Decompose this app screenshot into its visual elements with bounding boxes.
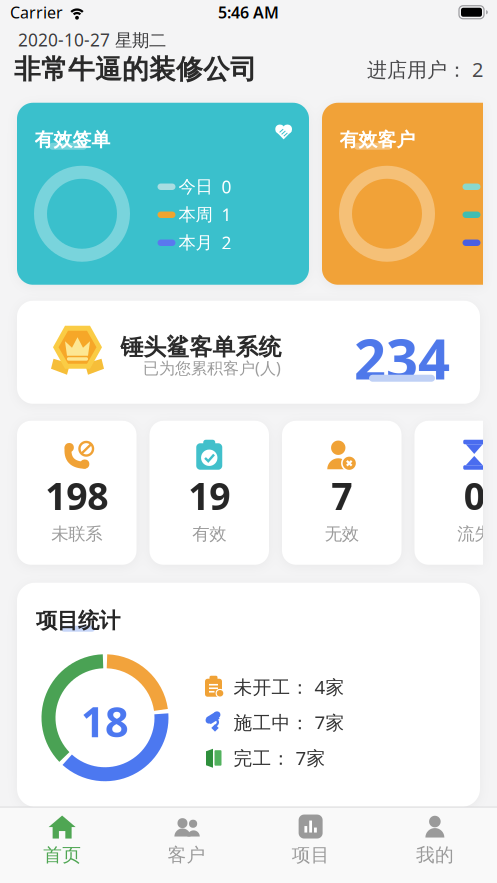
staticText: 本月 [178, 232, 212, 253]
staticText: 客户 [167, 843, 205, 866]
staticText: 7 [331, 471, 352, 520]
staticText: 流失 [457, 523, 491, 545]
staticText: 19 [188, 471, 230, 520]
staticText: 1 [221, 203, 231, 226]
staticText: 198 [45, 471, 108, 520]
staticText: 完工： 7家 [233, 745, 325, 770]
staticText: 首页 [43, 843, 81, 866]
button[interactable]: 客户 [124, 807, 248, 883]
staticText: 18 [81, 694, 129, 749]
button[interactable]: 进店用户： 2 [367, 56, 483, 83]
button[interactable]: 项目 [248, 807, 373, 883]
staticText: 有效 [192, 523, 226, 545]
staticText: 0 [221, 175, 231, 198]
staticText: 项目 [292, 843, 330, 866]
staticText: 非常牛逼的装修公司 [14, 53, 257, 86]
staticText: 本周 [178, 204, 212, 225]
staticText: 已为您累积客户(人) [143, 357, 281, 378]
staticText: 锤头鲨客单系统 [120, 333, 281, 361]
staticText: 未开工： 4家 [233, 674, 344, 699]
staticText: 无效 [325, 523, 359, 545]
staticText: 有效客户 [339, 128, 415, 151]
staticText: 今日 [178, 176, 212, 197]
staticText: 2020-10-27 星期二 [18, 28, 166, 51]
staticText: 2 [221, 231, 231, 254]
staticText: 未联系 [51, 523, 102, 545]
button[interactable]: 有效签单 [17, 103, 309, 285]
staticText: 0 [464, 471, 485, 520]
staticText: 有效签单 [34, 128, 110, 151]
staticText: 5:46 AM [218, 2, 279, 23]
button[interactable]: 19 [149, 421, 269, 565]
button[interactable]: 首页 [0, 807, 124, 883]
staticText: 我的 [416, 843, 454, 866]
staticText: 项目统计 [36, 608, 120, 634]
button[interactable]: 锤头鲨客单系统 [17, 301, 480, 404]
button[interactable]: 198 [17, 421, 136, 565]
staticText: 施工中： 7家 [233, 710, 344, 735]
button[interactable]: 7 [282, 421, 401, 565]
staticText: 234 [354, 321, 450, 395]
staticText: Carrier [10, 2, 63, 23]
staticText: 进店用户： 2 [367, 56, 483, 83]
button[interactable]: 有效客户 [322, 103, 497, 285]
button[interactable]: 我的 [373, 807, 497, 883]
button[interactable]: 0 [414, 421, 497, 565]
